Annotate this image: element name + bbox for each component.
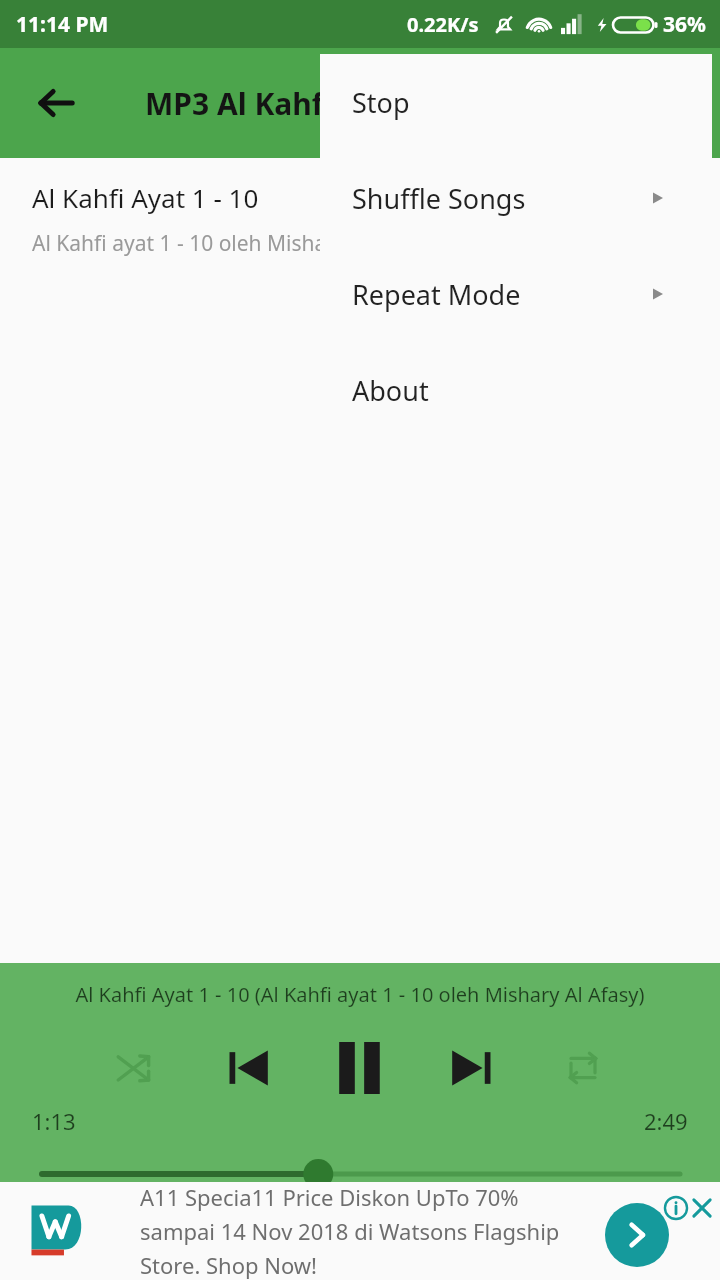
button[interactable]: Pause <box>320 1030 400 1106</box>
staticText: A11 Specia11 Price Diskon UpTo 70% <box>140 1182 519 1212</box>
staticText: Al Kahfi Ayat 1 - 10 <box>32 180 259 215</box>
staticText: Shuffle Songs <box>352 180 526 217</box>
button[interactable] <box>0 1156 720 1182</box>
staticText: Stop <box>352 84 410 121</box>
staticText: sampai 14 Nov 2018 di Watsons Flagship <box>140 1216 560 1246</box>
button[interactable]: Shuffle <box>103 1036 167 1100</box>
button[interactable]: Back <box>24 71 88 135</box>
button[interactable]: Repeat Mode <box>320 246 712 342</box>
button[interactable]: Next <box>440 1036 504 1100</box>
button[interactable]: Repeat <box>551 1036 615 1100</box>
button[interactable]: Close ad <box>686 1192 718 1224</box>
staticText: MP3 Al Kahfi <box>145 83 333 124</box>
staticText: Al Kahfi Ayat 1 - 10 (Al Kahfi ayat 1 - … <box>0 981 720 1008</box>
staticText: 36% <box>663 10 706 39</box>
button[interactable]: Al Kahfi Ayat 1 - 10 <box>0 158 720 278</box>
staticText: Store. Shop Now! <box>140 1250 318 1280</box>
staticText: 0.22K/s <box>407 11 479 38</box>
button[interactable]: Previous <box>216 1036 280 1100</box>
staticText: Al Kahfi ayat 1 - 10 oleh Mishary Al Afa… <box>32 229 429 258</box>
staticText: 11:14 PM <box>16 10 109 39</box>
staticText: 1:13 <box>32 1106 76 1136</box>
button[interactable]: Ad info <box>660 1192 692 1224</box>
staticText: 2:49 <box>644 1106 688 1136</box>
button[interactable]: Shuffle Songs <box>320 150 712 246</box>
staticText: Repeat Mode <box>352 276 521 313</box>
button[interactable]: A11 Specia11 Price Diskon UpTo 70% <box>0 1182 720 1280</box>
staticText: About <box>352 372 429 409</box>
button[interactable]: Open ad <box>605 1203 669 1267</box>
button[interactable]: About <box>320 342 712 438</box>
button[interactable]: Stop <box>320 54 712 150</box>
